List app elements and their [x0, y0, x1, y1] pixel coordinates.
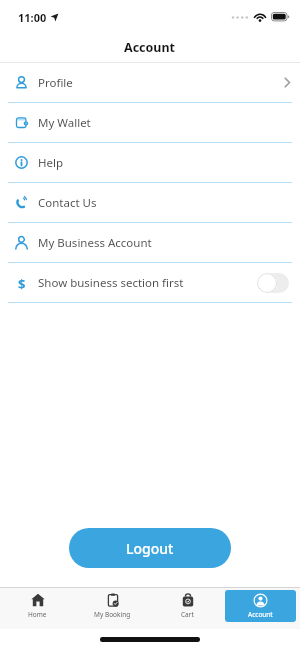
- button[interactable]: Help: [0, 143, 300, 182]
- staticText: Cart: [181, 610, 194, 619]
- button[interactable]: My Wallet: [0, 103, 300, 142]
- button[interactable]: My Business Account: [0, 223, 300, 262]
- button[interactable]: Home: [0, 588, 75, 623]
- staticText: Help: [38, 155, 64, 171]
- staticText: Show business section first: [38, 275, 184, 291]
- button[interactable]: My Booking: [75, 588, 150, 623]
- button[interactable]: [257, 273, 289, 293]
- staticText: Account: [248, 610, 273, 619]
- staticText: Logout: [126, 539, 174, 558]
- button[interactable]: Account: [225, 590, 296, 622]
- staticText: Home: [28, 610, 47, 619]
- staticText: Profile: [38, 75, 73, 91]
- staticText: 11:00: [18, 10, 47, 25]
- button[interactable]: $: [0, 263, 300, 302]
- staticText: Account: [124, 39, 176, 56]
- staticText: $: [18, 275, 26, 290]
- staticText: My Wallet: [38, 115, 91, 131]
- button[interactable]: Logout: [69, 528, 231, 568]
- button[interactable]: Profile: [0, 63, 300, 102]
- button[interactable]: Cart: [150, 588, 225, 623]
- button[interactable]: Contact Us: [0, 183, 300, 222]
- staticText: Contact Us: [38, 195, 97, 211]
- staticText: My Booking: [94, 610, 131, 619]
- staticText: My Business Account: [38, 235, 152, 251]
